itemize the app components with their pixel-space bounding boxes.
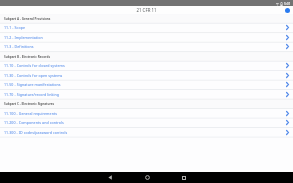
staticText: Subpart C - Electronic Signatures [4, 102, 55, 106]
staticText: 11.300 - ID codes/password controls [4, 130, 68, 135]
button[interactable]: 11.70 - Signature/record linking [0, 90, 293, 99]
staticText: 5:01 [284, 1, 291, 6]
staticText: 11.50 - Signature manifestations [4, 82, 61, 87]
button[interactable]: 11.2 - Implementation [0, 33, 293, 42]
button[interactable]: 11.300 - ID codes/password controls [0, 128, 293, 137]
staticText: 21 CFR 11 [136, 7, 157, 13]
button[interactable]: Recents [173, 172, 195, 183]
button[interactable]: 11.10 - Controls for closed systems [0, 61, 293, 70]
staticText: Subpart B - Electronic Records [4, 55, 50, 59]
button[interactable]: Info [285, 8, 290, 13]
staticText: 11.10 - Controls for closed systems [4, 63, 65, 68]
button[interactable]: 11.1 - Scope [0, 23, 293, 32]
staticText: 11.100 - General requirements [4, 111, 58, 116]
button[interactable]: 11.50 - Signature manifestations [0, 80, 293, 89]
staticText: 11.3 - Definitions [4, 44, 34, 49]
button[interactable]: 11.30 - Controls for open systems [0, 71, 293, 80]
staticText: 11.70 - Signature/record linking [4, 92, 60, 97]
staticText: 11.1 - Scope [4, 25, 25, 30]
staticText: Subpart A - General Provisions [4, 17, 51, 21]
staticText: 11.30 - Controls for open systems [4, 73, 63, 78]
staticText: 11.2 - Implementation [4, 35, 43, 40]
button[interactable]: 11.3 - Definitions [0, 42, 293, 51]
staticText: 11.200 - Components and controls [4, 120, 64, 125]
button[interactable]: 11.100 - General requirements [0, 109, 293, 118]
button[interactable]: Home [136, 172, 158, 183]
button[interactable]: 11.200 - Components and controls [0, 118, 293, 127]
button[interactable]: Back [99, 172, 121, 183]
